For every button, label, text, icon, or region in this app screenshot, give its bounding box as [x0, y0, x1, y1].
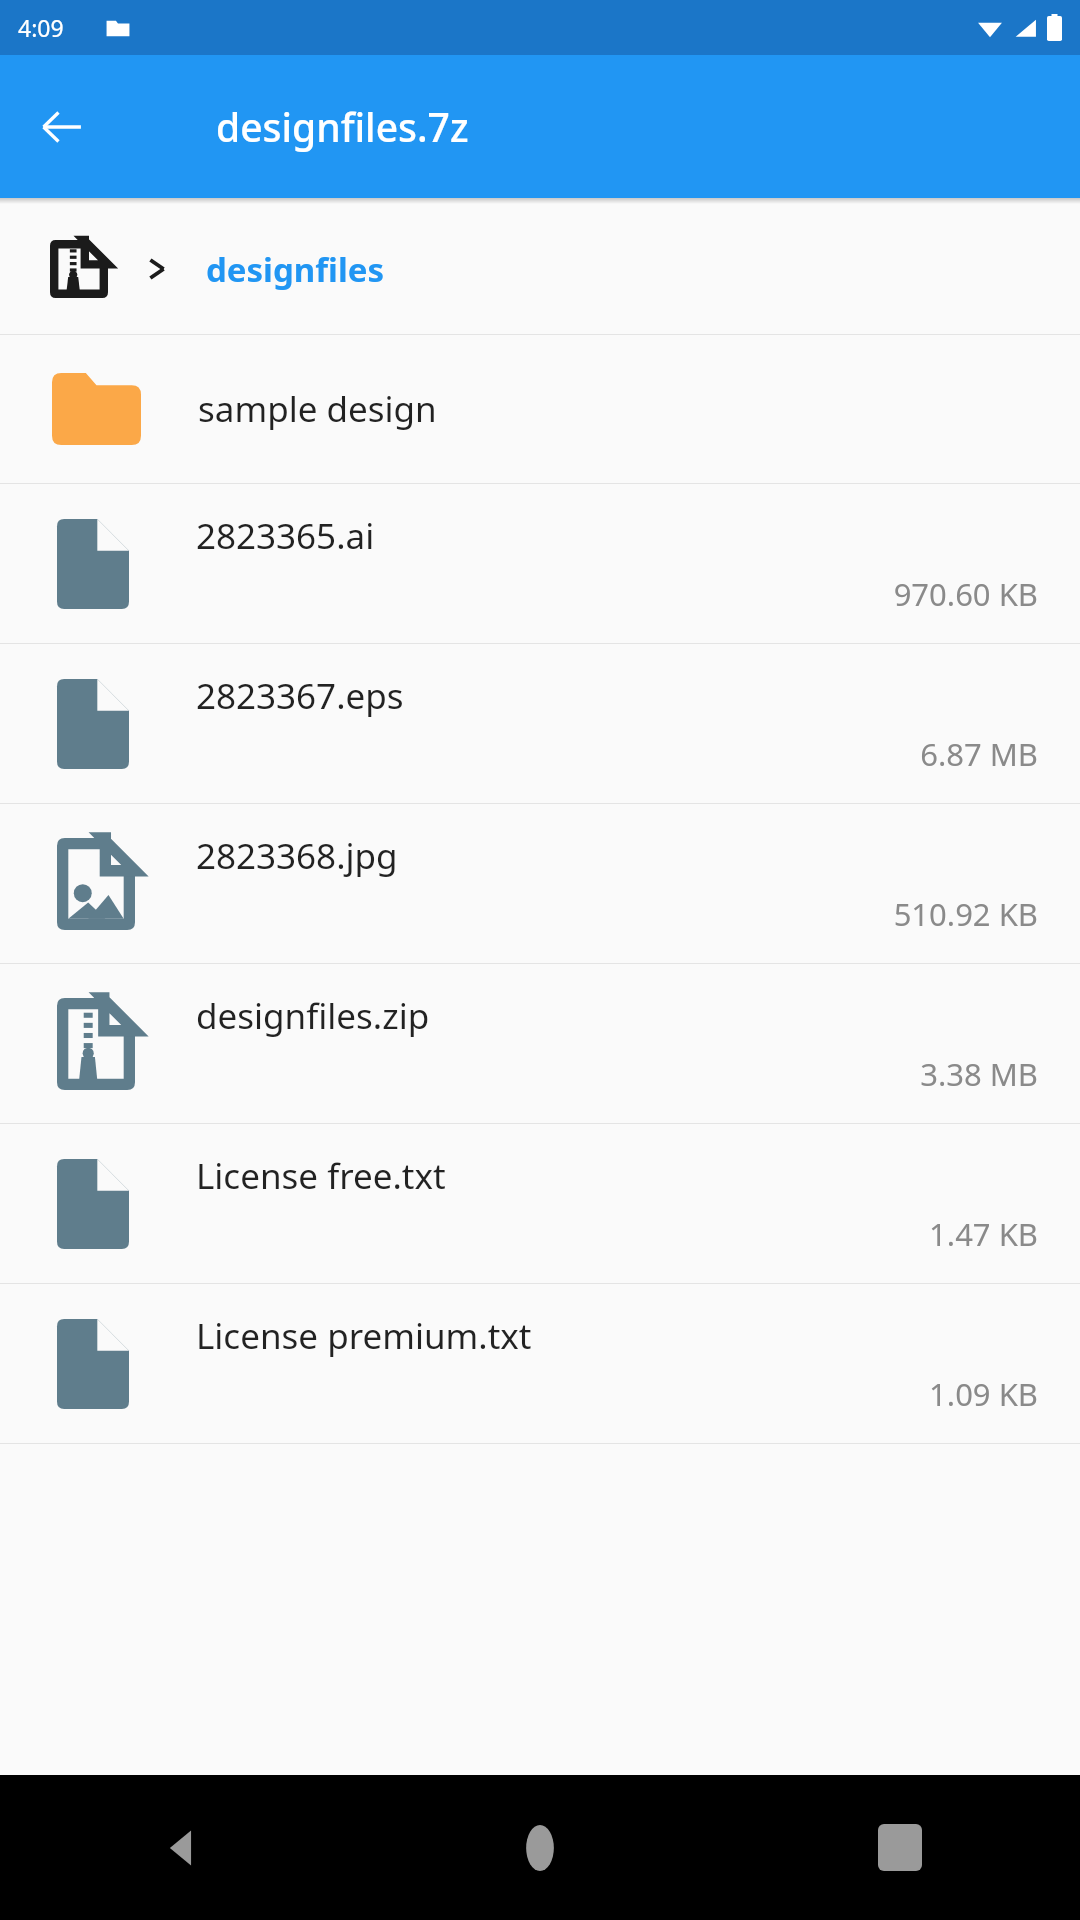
- button[interactable]: 2823365.ai: [0, 484, 1080, 643]
- button[interactable]: designfiles: [0, 204, 1080, 334]
- staticText: 1.09 KB: [929, 1373, 1038, 1415]
- button[interactable]: 2823368.jpg: [0, 804, 1080, 963]
- staticText: designfiles.7z: [216, 100, 469, 153]
- staticText: 4:09: [18, 12, 64, 43]
- button[interactable]: designfiles.zip: [0, 964, 1080, 1123]
- staticText: 6.87 MB: [920, 733, 1038, 775]
- staticText: License premium.txt: [196, 1312, 532, 1360]
- button[interactable]: Back: [0, 1775, 360, 1920]
- staticText: designfiles: [206, 247, 385, 292]
- staticText: 970.60 KB: [893, 573, 1038, 615]
- button[interactable]: Home: [360, 1775, 720, 1920]
- staticText: 2823365.ai: [196, 512, 375, 560]
- staticText: License free.txt: [196, 1152, 446, 1200]
- button[interactable]: Recents: [720, 1775, 1080, 1920]
- staticText: 2823367.eps: [196, 672, 404, 720]
- button[interactable]: License free.txt: [0, 1124, 1080, 1283]
- staticText: 2823368.jpg: [196, 832, 398, 880]
- button[interactable]: 2823367.eps: [0, 644, 1080, 803]
- button[interactable]: sample design: [0, 335, 1080, 483]
- staticText: 1.47 KB: [929, 1213, 1038, 1255]
- button[interactable]: Back: [26, 91, 98, 163]
- staticText: 3.38 MB: [920, 1053, 1038, 1095]
- staticText: sample design: [198, 385, 437, 433]
- button[interactable]: License premium.txt: [0, 1284, 1080, 1443]
- staticText: designfiles.zip: [196, 992, 430, 1040]
- staticText: 510.92 KB: [893, 893, 1038, 935]
